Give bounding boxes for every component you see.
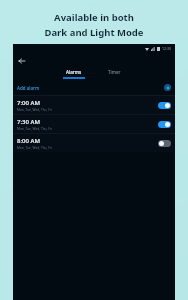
staticText: 7:30 AM xyxy=(17,118,40,126)
other: Add alarm xyxy=(164,84,171,91)
button[interactable]: 8:00 AM xyxy=(13,134,175,152)
button[interactable]: Alarms xyxy=(63,69,85,79)
staticText: Dark and Light Mode xyxy=(44,26,144,39)
button[interactable]: 7:30 AM xyxy=(13,115,175,133)
button[interactable]: Back xyxy=(16,55,27,66)
button[interactable]: Alarm on xyxy=(158,121,171,128)
button[interactable]: Add alarm xyxy=(13,80,175,95)
staticText: Add alarm xyxy=(17,85,40,91)
staticText: Available in both xyxy=(54,11,134,24)
button[interactable]: Alarm off xyxy=(158,140,171,147)
staticText: Timer xyxy=(108,69,121,75)
staticText: Mon, Tue, Wed, Thu, Fri xyxy=(17,127,53,131)
button[interactable]: Timer xyxy=(103,69,125,79)
button[interactable]: Alarm on xyxy=(158,102,171,109)
button[interactable]: 7:00 AM xyxy=(13,96,175,114)
staticText: Mon, Tue, Wed, Thu, Fri xyxy=(17,108,53,112)
staticText: 7:00 AM xyxy=(17,99,40,107)
staticText: 12:30 xyxy=(162,46,171,51)
staticText: Mon, Tue, Wed, Thu, Fri xyxy=(17,146,53,150)
staticText: 8:00 AM xyxy=(17,137,40,145)
staticText: Alarms xyxy=(66,69,82,75)
